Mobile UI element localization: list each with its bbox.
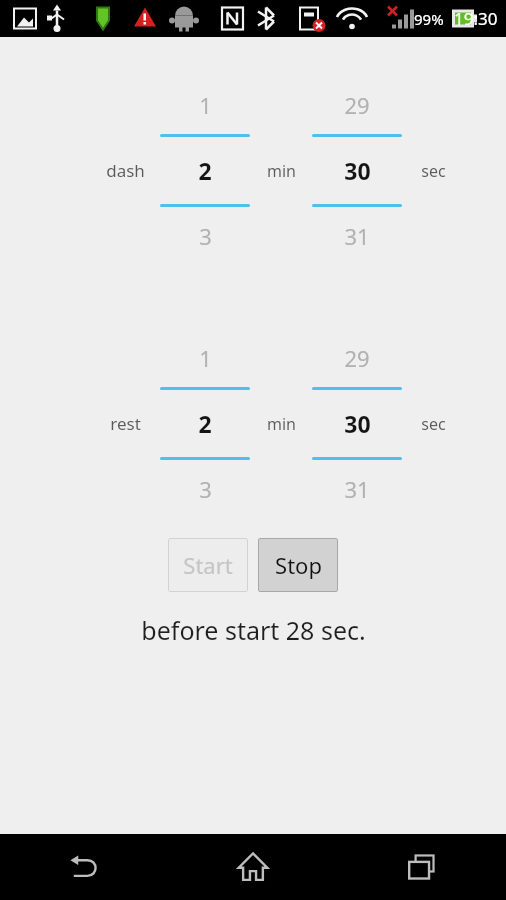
staticText: 29: [344, 343, 370, 373]
button[interactable]: Start: [168, 538, 248, 592]
button[interactable]: Back: [0, 834, 168, 900]
staticText: 19:30: [454, 7, 498, 30]
staticText: before start 28 sec.: [141, 613, 366, 647]
staticText: Start: [183, 550, 233, 580]
staticText: 2: [198, 155, 212, 186]
staticText: 31: [344, 474, 370, 504]
staticText: 99%: [414, 9, 444, 29]
staticText: 29: [344, 90, 370, 120]
staticText: 2: [198, 408, 212, 439]
staticText: rest: [110, 412, 141, 435]
button[interactable]: Home: [168, 834, 337, 900]
button[interactable]: 29: [312, 339, 402, 508]
staticText: 1: [199, 90, 212, 120]
staticText: min: [267, 413, 296, 435]
staticText: Stop: [275, 550, 322, 580]
staticText: dash: [106, 159, 145, 182]
staticText: sec: [421, 413, 446, 435]
staticText: 30: [344, 155, 371, 186]
button[interactable]: Recent apps: [337, 834, 506, 900]
staticText: 3: [199, 221, 212, 251]
staticText: 1: [199, 343, 212, 373]
button[interactable]: 1: [160, 86, 250, 255]
staticText: 31: [344, 221, 370, 251]
staticText: sec: [421, 160, 446, 182]
staticText: 3: [199, 474, 212, 504]
staticText: 30: [344, 408, 371, 439]
button[interactable]: 1: [160, 339, 250, 508]
button[interactable]: Stop: [258, 538, 338, 592]
staticText: min: [267, 160, 296, 182]
button[interactable]: 29: [312, 86, 402, 255]
